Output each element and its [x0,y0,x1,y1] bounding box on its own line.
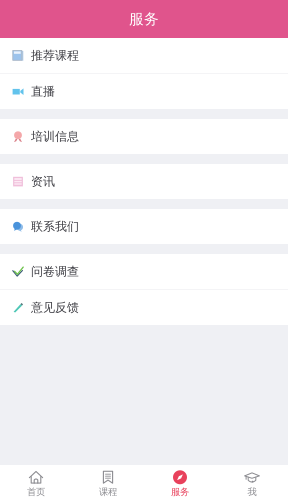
button[interactable]: 资讯 [0,164,288,199]
button[interactable]: 培训信息 [0,119,288,154]
staticText: 我 [247,486,256,498]
staticText: 推荐课程 [31,48,79,63]
button[interactable]: 服务 [144,463,216,500]
staticText: 服务 [171,486,189,498]
button[interactable]: 首页 [0,463,72,500]
button[interactable]: 课程 [72,463,144,500]
staticText: 课程 [99,486,117,498]
button[interactable]: 联系我们 [0,209,288,244]
staticText: 问卷调查 [31,264,79,279]
button[interactable]: 意见反馈 [0,290,288,325]
staticText: 资讯 [31,174,55,189]
staticText: 联系我们 [31,219,79,234]
staticText: 培训信息 [31,129,79,144]
button[interactable]: 问卷调查 [0,254,288,289]
staticText: 首页 [27,486,45,498]
staticText: 服务 [129,10,159,28]
button[interactable]: 直播 [0,74,288,109]
staticText: 意见反馈 [31,300,79,315]
staticText: 直播 [31,84,55,99]
button[interactable]: 我 [216,463,288,500]
button[interactable]: 推荐课程 [0,38,288,73]
